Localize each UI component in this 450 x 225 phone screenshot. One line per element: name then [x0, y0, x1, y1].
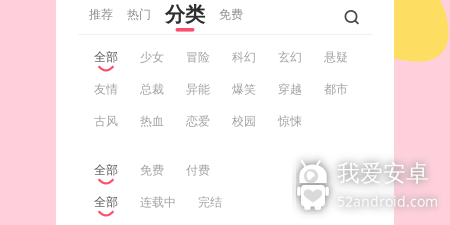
staticText: 热血: [140, 114, 164, 129]
button[interactable]: 异能: [186, 82, 210, 101]
button[interactable]: 完结: [198, 195, 222, 214]
button[interactable]: 热门: [127, 1, 151, 34]
staticText: 穿越: [278, 82, 302, 97]
staticText: 友情: [94, 82, 118, 97]
button[interactable]: 穿越: [278, 82, 302, 101]
button[interactable]: 分类: [165, 1, 205, 34]
staticText: 连载中: [140, 195, 176, 210]
staticText: 校园: [232, 114, 256, 129]
staticText: 我爱安卓: [337, 159, 429, 188]
button[interactable]: 全部: [94, 195, 118, 214]
staticText: 热门: [127, 7, 151, 22]
staticText: 古风: [94, 114, 118, 129]
button[interactable]: 玄幻: [278, 50, 302, 69]
staticText: 完结: [198, 195, 222, 210]
staticText: 都市: [324, 82, 348, 97]
staticText: 爆笑: [232, 82, 256, 97]
staticText: 少女: [140, 50, 164, 65]
staticText: 免费: [140, 163, 164, 178]
staticText: 科幻: [232, 50, 256, 65]
button[interactable]: 免费: [140, 163, 164, 182]
button[interactable]: 总裁: [140, 82, 164, 101]
button[interactable]: 少女: [140, 50, 164, 69]
button[interactable]: 推荐: [89, 1, 113, 34]
staticText: 全部: [94, 162, 118, 178]
staticText: 全部: [94, 194, 118, 210]
button[interactable]: 付费: [186, 163, 210, 182]
button[interactable]: 全部: [94, 50, 118, 69]
staticText: 异能: [186, 82, 210, 97]
staticText: 恋爱: [186, 114, 210, 129]
staticText: 52android.com: [337, 192, 438, 211]
button[interactable]: 恋爱: [186, 114, 210, 133]
staticText: 悬疑: [324, 50, 348, 65]
staticText: 玄幻: [278, 50, 302, 65]
button[interactable]: 科幻: [232, 50, 256, 69]
button[interactable]: 爆笑: [232, 82, 256, 101]
staticText: 冒险: [186, 50, 210, 65]
staticText: 惊悚: [278, 114, 302, 129]
staticText: 总裁: [140, 82, 164, 97]
button[interactable]: 惊悚: [278, 114, 302, 133]
button[interactable]: 友情: [94, 82, 118, 101]
staticText: 推荐: [89, 7, 113, 22]
button[interactable]: 连载中: [140, 195, 176, 214]
button[interactable]: 悬疑: [324, 50, 348, 69]
button[interactable]: 都市: [324, 82, 348, 101]
staticText: 付费: [186, 163, 210, 178]
staticText: 全部: [94, 49, 118, 65]
button[interactable]: 校园: [232, 114, 256, 133]
button[interactable]: Search: [336, 1, 368, 33]
button[interactable]: 全部: [94, 163, 118, 182]
staticText: 免费: [219, 7, 243, 22]
button[interactable]: 热血: [140, 114, 164, 133]
staticText: 分类: [165, 2, 205, 27]
button[interactable]: 古风: [94, 114, 118, 133]
button[interactable]: 免费: [219, 1, 243, 34]
button[interactable]: 冒险: [186, 50, 210, 69]
